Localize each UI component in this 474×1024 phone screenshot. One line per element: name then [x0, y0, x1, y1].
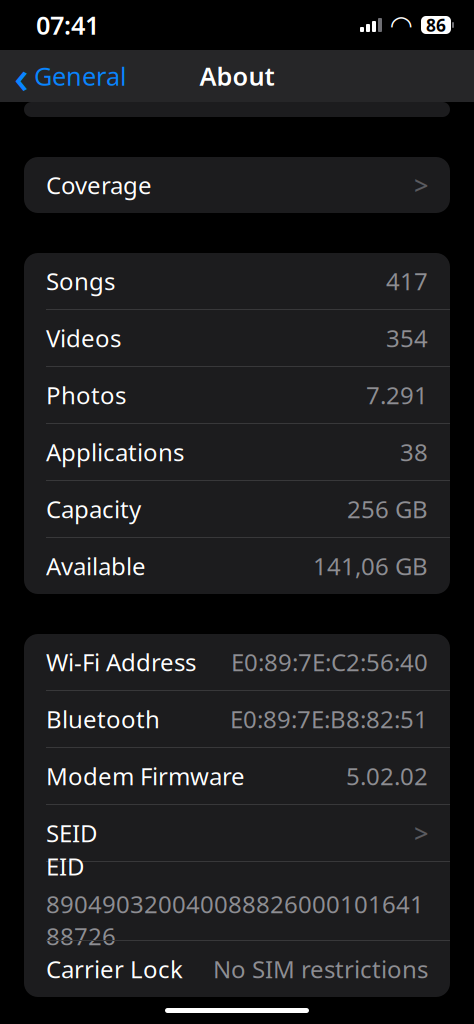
button[interactable]: EID: [24, 862, 450, 940]
staticText: Songs: [46, 265, 115, 297]
staticText: Wi-Fi Address: [46, 646, 196, 678]
staticText: 38: [400, 436, 428, 468]
button[interactable]: Songs: [24, 253, 450, 309]
staticText: 86: [426, 13, 446, 36]
staticText: Photos: [46, 379, 126, 411]
staticText: General: [34, 59, 127, 93]
staticText: Applications: [46, 436, 184, 468]
staticText: 07:41: [36, 8, 99, 42]
staticText: >: [414, 816, 428, 850]
button[interactable]: Coverage: [24, 157, 450, 213]
staticText: SEID: [46, 817, 98, 849]
button[interactable]: Applications: [24, 424, 450, 480]
button[interactable]: Modem Firmware: [24, 748, 450, 804]
staticText: 7.291: [366, 379, 428, 411]
staticText: About: [199, 59, 274, 93]
staticText: E0:89:7E:C2:56:40: [231, 646, 428, 678]
staticText: Capacity: [46, 493, 141, 525]
staticText: Coverage: [46, 169, 152, 201]
button[interactable]: ‹: [0, 50, 137, 102]
staticText: No SIM restrictions: [213, 953, 428, 985]
button[interactable]: Capacity: [24, 481, 450, 537]
staticText: 354: [386, 322, 428, 354]
button[interactable]: SEID: [24, 805, 450, 861]
staticText: E0:89:7E:B8:82:51: [230, 703, 428, 735]
button[interactable]: Available: [24, 538, 450, 594]
staticText: >: [414, 168, 428, 202]
staticText: Bluetooth: [46, 703, 160, 735]
staticText: 5.02.02: [346, 760, 428, 792]
staticText: 89049032004008882600010164188726: [46, 888, 424, 952]
button[interactable]: Videos: [24, 310, 450, 366]
staticText: Modem Firmware: [46, 760, 245, 792]
staticText: ◠: [391, 10, 412, 40]
staticText: ‹: [14, 46, 29, 106]
staticText: 417: [386, 265, 428, 297]
staticText: Carrier Lock: [46, 953, 183, 985]
staticText: EID: [46, 850, 85, 882]
staticText: 256 GB: [347, 493, 428, 525]
button[interactable]: Photos: [24, 367, 450, 423]
staticText: 141,06 GB: [313, 550, 428, 582]
button[interactable]: Bluetooth: [24, 691, 450, 747]
staticText: Videos: [46, 322, 121, 354]
button[interactable]: Wi-Fi Address: [24, 634, 450, 690]
button[interactable]: Carrier Lock: [24, 941, 450, 997]
staticText: Available: [46, 550, 146, 582]
